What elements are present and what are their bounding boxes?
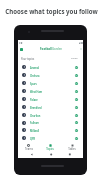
staticText: Arsenal — [30, 66, 40, 69]
staticText: Palace — [30, 98, 38, 101]
button[interactable]: Spurs — [18, 79, 83, 87]
staticText: Millwall — [30, 129, 40, 132]
button[interactable]: Tables — [61, 142, 83, 152]
staticText: Tables — [68, 147, 76, 151]
staticText: QPR — [30, 137, 36, 140]
staticText: Saved — [71, 57, 78, 60]
button[interactable]: Arsenal — [18, 63, 83, 71]
button[interactable]: West Ham — [18, 87, 83, 95]
staticText: Spurs — [30, 82, 37, 85]
button[interactable]: Brentford — [18, 103, 83, 111]
button[interactable]: Menu — [19, 47, 23, 51]
staticText: West Ham — [30, 90, 43, 93]
button[interactable]: QPR — [18, 134, 83, 142]
staticText: Charlton — [30, 114, 41, 117]
button[interactable]: Charlton — [18, 111, 83, 119]
button[interactable]: Palace — [18, 95, 83, 103]
button[interactable]: Topics — [39, 142, 61, 152]
staticText: Fulham — [30, 121, 39, 124]
button[interactable]: Account — [79, 47, 83, 51]
staticText: Brentford — [30, 106, 42, 109]
staticText: Chelsea — [30, 74, 40, 77]
staticText: Garden — [52, 47, 63, 51]
staticText: Football — [40, 47, 52, 51]
staticText: Topics — [46, 147, 54, 151]
staticText: Your topics — [21, 57, 35, 60]
staticText: Choose what topics you follow — [5, 7, 98, 15]
button[interactable]: Chelsea — [18, 71, 83, 79]
staticText: Teams — [25, 147, 33, 151]
button[interactable]: Fulham — [18, 119, 83, 126]
button[interactable]: Millwall — [18, 126, 83, 134]
button[interactable]: Teams — [18, 142, 39, 152]
